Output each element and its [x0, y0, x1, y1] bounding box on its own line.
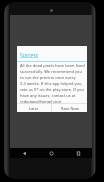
button[interactable]: Home — [38, 148, 65, 158]
staticText: Rate Now — [61, 106, 79, 111]
staticText: rate us 5* on the play store. If you — [20, 87, 84, 93]
staticText: have any issues, contact us at — [20, 93, 76, 99]
button[interactable]: Back — [10, 148, 38, 158]
button[interactable]: Recents — [65, 148, 92, 158]
staticText: successfully. We recommend you — [20, 69, 82, 75]
staticText: to run the process once every — [20, 75, 76, 81]
staticText: redipiapp@gmail.com — [20, 99, 62, 104]
staticText: 2-3 weeks. If this app helped you, — [20, 81, 83, 87]
staticText: Success — [20, 51, 39, 60]
button[interactable]: Later — [17, 104, 51, 112]
staticText: Later — [29, 106, 39, 111]
staticText: All the dead pixels have been fixed — [20, 63, 85, 69]
button[interactable]: Rate Now — [52, 104, 87, 112]
